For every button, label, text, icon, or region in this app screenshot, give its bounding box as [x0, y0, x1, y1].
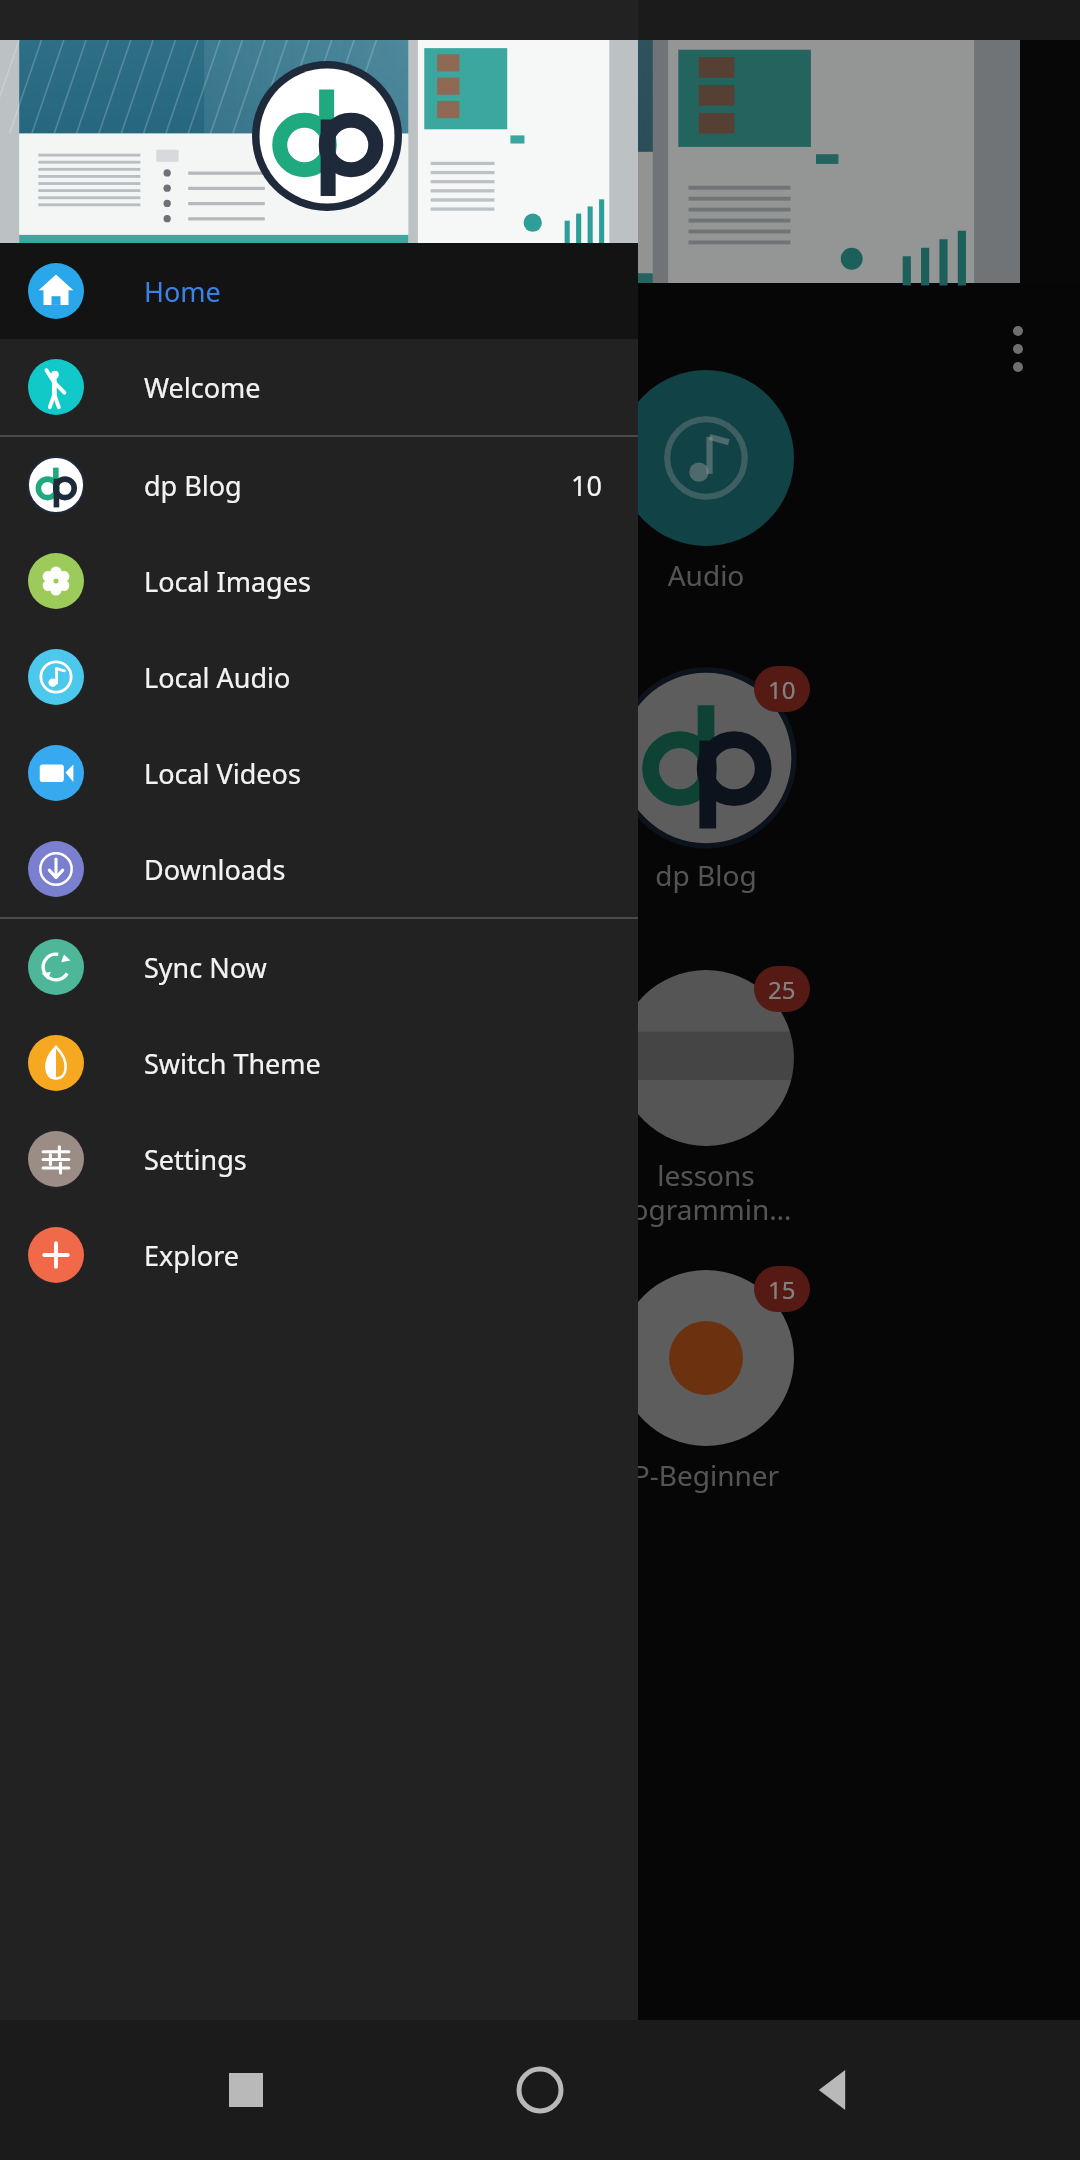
staticText: P-Beginner: [556, 1456, 856, 1494]
button[interactable]: Explore: [0, 1207, 638, 1303]
button[interactable]: Downloads: [0, 821, 638, 917]
button[interactable]: Home: [492, 2042, 588, 2138]
staticText: dp Blog: [556, 856, 856, 894]
button[interactable]: Home: [0, 243, 638, 339]
staticText: Downloads: [144, 851, 286, 888]
button[interactable]: Recent apps: [198, 2042, 294, 2138]
button[interactable]: Settings: [0, 1111, 638, 1207]
button[interactable]: 25: [556, 960, 856, 1250]
button[interactable]: Local Audio: [0, 629, 638, 725]
staticText: Local Audio: [144, 659, 291, 696]
staticText: 25: [768, 973, 796, 1006]
staticText: Welcome: [144, 369, 261, 406]
button[interactable]: Welcome: [0, 339, 638, 435]
button[interactable]: Audio: [556, 360, 856, 650]
staticText: Local Images: [144, 563, 311, 600]
staticText: Po: [620, 466, 662, 512]
staticText: Sync Now: [144, 949, 267, 986]
staticText: dp Blog: [144, 467, 242, 504]
staticText: Home: [144, 273, 221, 310]
button[interactable]: More options: [982, 313, 1054, 385]
button[interactable]: 15: [556, 1260, 856, 1550]
staticText: Explore: [144, 1237, 240, 1274]
staticText: Settings: [144, 1141, 247, 1178]
staticText: Switch Theme: [144, 1045, 321, 1082]
button[interactable]: Switch Theme: [0, 1015, 638, 1111]
staticText: 10: [571, 467, 602, 504]
button[interactable]: Sync Now: [0, 919, 638, 1015]
button[interactable]: Back: [786, 2042, 882, 2138]
staticText: 15: [768, 1273, 796, 1306]
button[interactable]: Add: [706, 453, 778, 525]
button[interactable]: 10: [556, 660, 856, 950]
staticText: Audio: [556, 556, 856, 594]
staticText: Local Videos: [144, 755, 301, 792]
button[interactable]: Local Videos: [0, 725, 638, 821]
staticText: 10: [768, 673, 796, 706]
staticText: lessons rogrammin…: [556, 1156, 856, 1228]
button[interactable]: dp Blog: [0, 437, 638, 533]
button[interactable]: Local Images: [0, 533, 638, 629]
